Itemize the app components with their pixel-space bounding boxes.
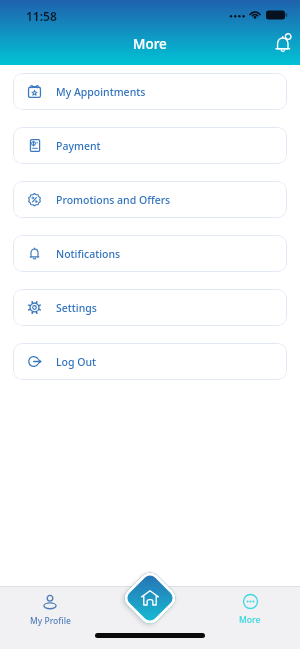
- staticText: Notifications: [56, 247, 121, 261]
- staticText: My Profile: [30, 615, 71, 627]
- staticText: Log Out: [56, 355, 97, 369]
- staticText: 11:58: [26, 8, 57, 24]
- button[interactable]: [271, 30, 295, 54]
- staticText: Payment: [56, 139, 101, 153]
- staticText: Settings: [56, 301, 97, 315]
- button[interactable]: My Appointments: [13, 73, 287, 110]
- button[interactable]: More: [218, 593, 282, 635]
- button[interactable]: Payment: [13, 127, 287, 164]
- staticText: More: [239, 614, 261, 626]
- button[interactable]: My Profile: [18, 593, 82, 635]
- staticText: Promotions and Offers: [56, 193, 171, 207]
- button[interactable]: [122, 570, 178, 626]
- button[interactable]: Notifications: [13, 235, 287, 272]
- button[interactable]: Log Out: [13, 343, 287, 380]
- button[interactable]: Promotions and Offers: [13, 181, 287, 218]
- staticText: More: [133, 35, 167, 53]
- staticText: My Appointments: [56, 85, 146, 99]
- button[interactable]: Settings: [13, 289, 287, 326]
